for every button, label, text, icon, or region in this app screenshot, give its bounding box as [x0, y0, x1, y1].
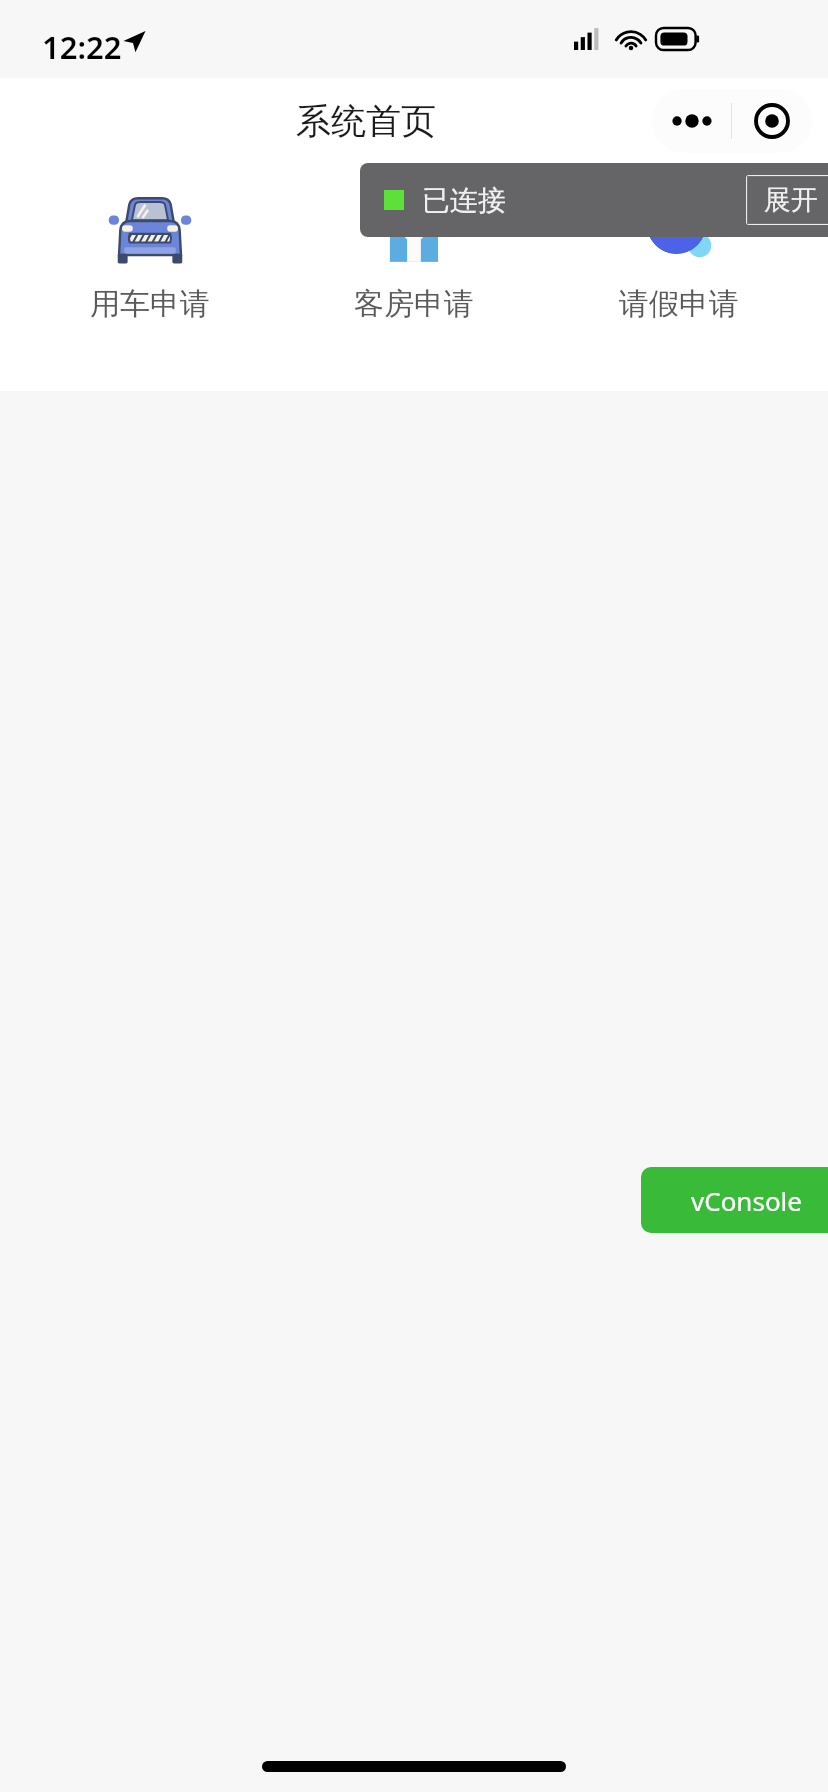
staticText: 系统首页 — [296, 99, 436, 143]
staticText: vConsole — [691, 1183, 802, 1218]
button[interactable]: 展开 — [746, 175, 828, 225]
button[interactable]: 用车申请 — [35, 181, 265, 323]
staticText: 请假申请 — [619, 285, 739, 323]
button[interactable]: vConsole — [641, 1167, 828, 1233]
staticText: 展开 — [764, 183, 818, 217]
button[interactable]: Close — [732, 89, 812, 153]
staticText: 用车申请 — [90, 285, 210, 323]
staticText: 12:22 — [42, 26, 122, 68]
staticText: 已连接 — [422, 183, 506, 218]
button[interactable]: More — [652, 89, 731, 153]
staticText: 客房申请 — [354, 285, 474, 323]
button[interactable]: 客房申请 — [299, 181, 529, 323]
button[interactable]: 请假申请 — [564, 181, 794, 323]
